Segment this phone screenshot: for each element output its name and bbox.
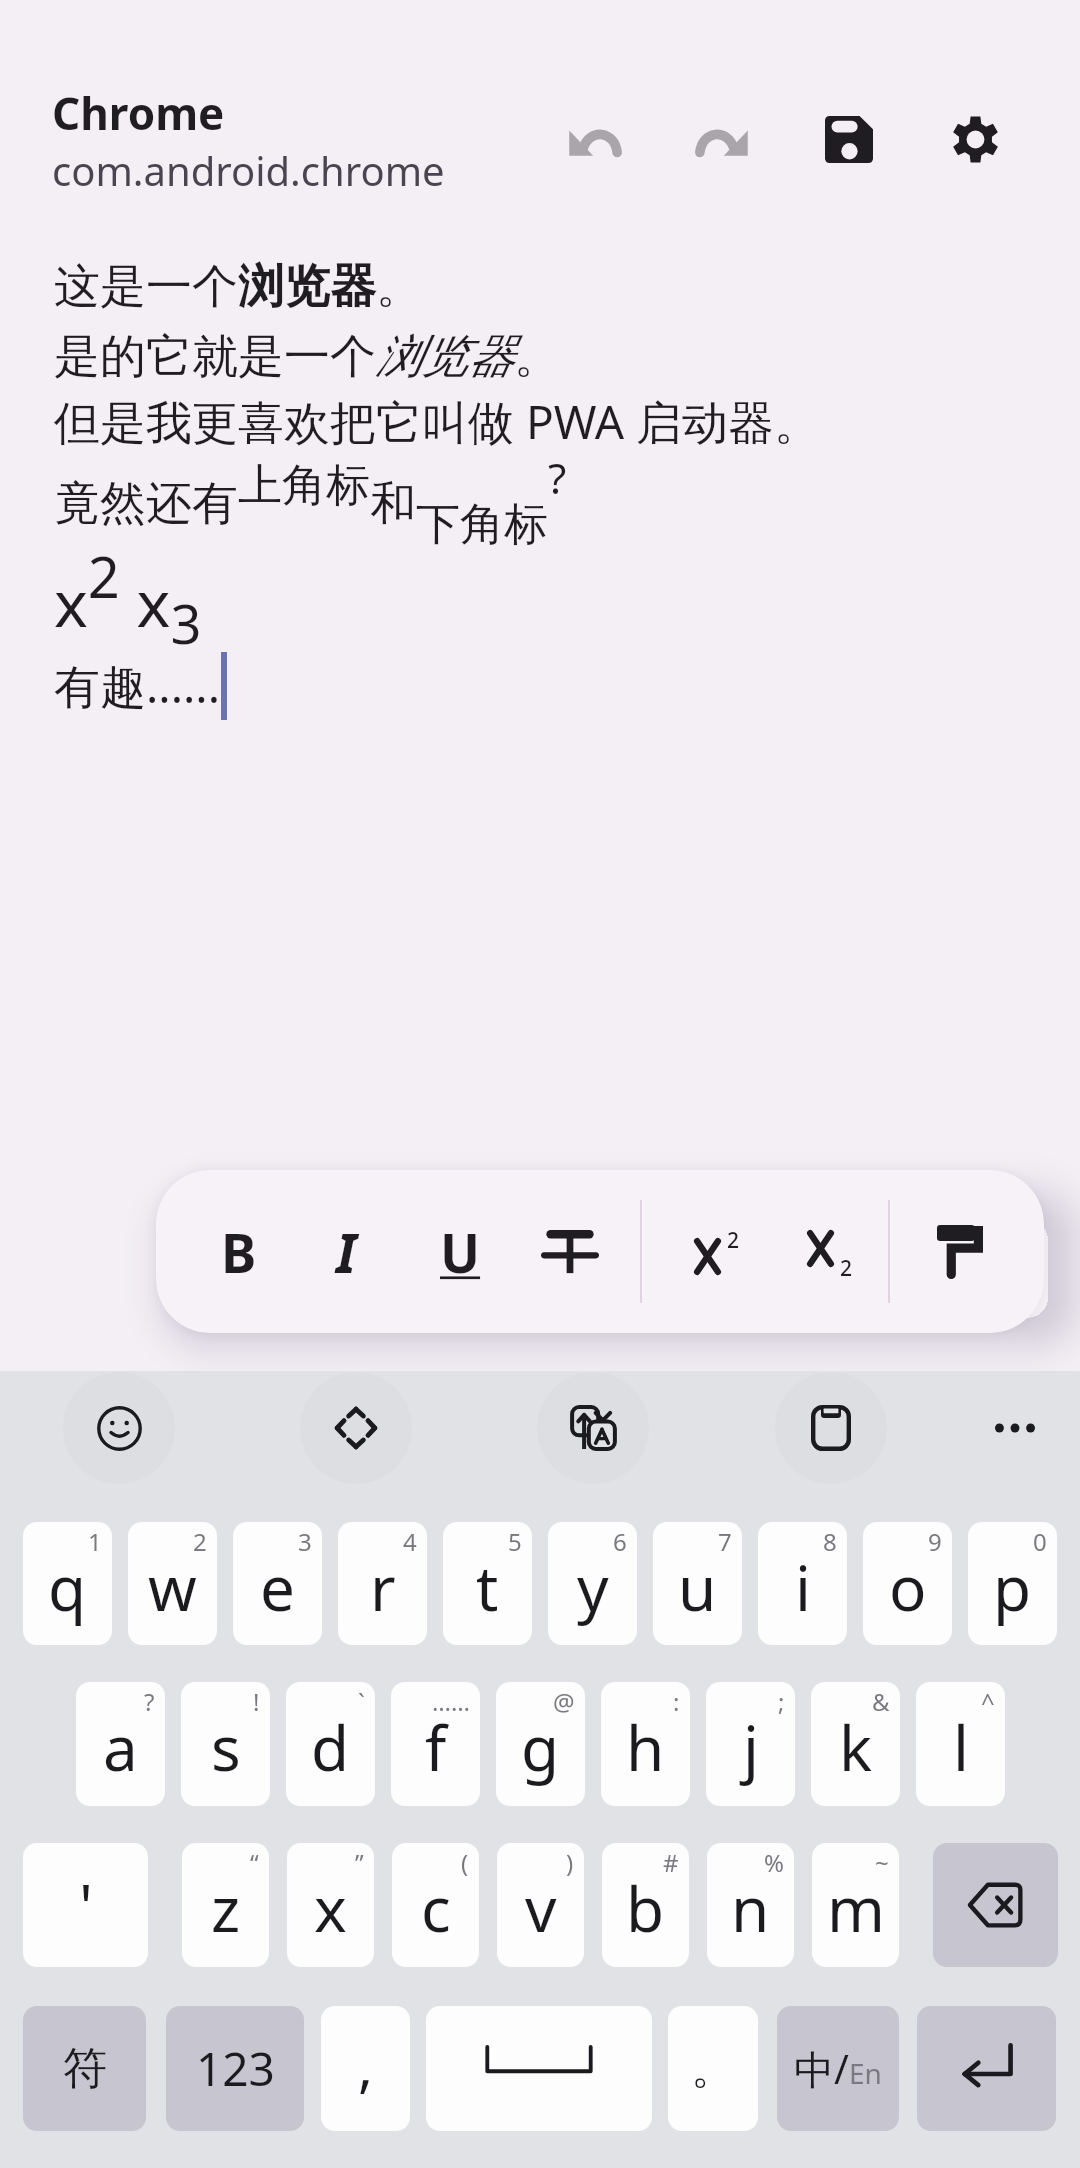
button[interactable]: 0 (968, 1522, 1057, 1645)
staticText: q (48, 1545, 87, 1629)
staticText: g (521, 1705, 560, 1789)
staticText: d (311, 1705, 350, 1789)
button[interactable]: “ (182, 1843, 269, 1967)
staticText: b (626, 1866, 665, 1950)
staticText: j (743, 1705, 759, 1789)
staticText: ) (566, 1846, 574, 1879)
staticText: n (731, 1866, 770, 1950)
button[interactable]: : (601, 1682, 690, 1806)
staticText: p (993, 1545, 1032, 1629)
button[interactable]: 3 (233, 1522, 322, 1645)
staticText: 0 (1033, 1525, 1047, 1558)
staticText: f (425, 1705, 447, 1789)
button[interactable]: & (811, 1682, 900, 1806)
button[interactable]: ^ (916, 1682, 1005, 1806)
button[interactable]: Chrome (52, 83, 445, 197)
button[interactable]: Settings (923, 87, 1027, 191)
staticText: 2 (193, 1525, 207, 1558)
button[interactable]: Italic (291, 1170, 401, 1333)
button[interactable]: ( (392, 1843, 479, 1967)
staticText: u (678, 1545, 717, 1629)
staticText: s (211, 1705, 241, 1789)
staticText: ^ (981, 1685, 995, 1718)
button[interactable]: Underline (405, 1170, 515, 1333)
button[interactable]: , (321, 2006, 410, 2131)
staticText: B (221, 1216, 257, 1288)
button[interactable]: ; (706, 1682, 795, 1806)
button[interactable]: ! (181, 1682, 270, 1806)
staticText: 7 (718, 1525, 732, 1558)
staticText: 3 (298, 1525, 312, 1558)
button[interactable]: Strikethrough (515, 1170, 625, 1333)
staticText: h (626, 1705, 665, 1789)
button[interactable]: ' (23, 1843, 148, 1967)
staticText: ( (461, 1846, 469, 1879)
staticText: ; (778, 1685, 785, 1718)
button[interactable]: Text style (905, 1170, 1015, 1333)
button[interactable]: Clipboard (775, 1372, 887, 1484)
staticText: I (336, 1216, 357, 1288)
button[interactable]: …… (391, 1682, 480, 1806)
staticText: ` (358, 1685, 365, 1718)
button[interactable]: Superscript (661, 1170, 771, 1333)
button[interactable]: 4 (338, 1522, 427, 1645)
button[interactable]: 。 (668, 2006, 758, 2131)
staticText: ? (144, 1685, 155, 1718)
staticText: 8 (823, 1525, 837, 1558)
staticText: a (103, 1705, 138, 1789)
button[interactable]: Undo (543, 89, 647, 193)
button[interactable]: Save (797, 87, 901, 191)
button[interactable]: 5 (443, 1522, 532, 1645)
staticText: 中/En (794, 2041, 882, 2096)
button[interactable]: 7 (653, 1522, 742, 1645)
button[interactable]: Translate (537, 1372, 649, 1484)
button[interactable]: Bold (184, 1170, 294, 1333)
button[interactable]: ) (497, 1843, 584, 1967)
button[interactable]: Move cursor (300, 1372, 412, 1484)
button[interactable]: Subscript (774, 1170, 884, 1333)
staticText: “ (250, 1846, 259, 1879)
button[interactable]: 8 (758, 1522, 847, 1645)
button[interactable]: Enter (917, 2006, 1056, 2131)
staticText: % (764, 1846, 784, 1879)
button[interactable]: 2 (128, 1522, 217, 1645)
staticText: ! (253, 1685, 260, 1718)
staticText: l (953, 1705, 969, 1789)
staticText: t (476, 1545, 499, 1629)
staticText: e (260, 1545, 295, 1629)
button[interactable]: More options (959, 1372, 1071, 1484)
staticText: k (839, 1705, 873, 1789)
staticText: @ (553, 1685, 575, 1718)
staticText: U (440, 1216, 481, 1288)
staticText: 4 (403, 1525, 417, 1558)
staticText: 2 (840, 1254, 853, 1283)
staticText: v (525, 1866, 557, 1950)
button[interactable]: Redo (669, 89, 773, 193)
button[interactable]: Backspace (933, 1843, 1058, 1967)
button[interactable]: ~ (812, 1843, 899, 1967)
staticText: c (421, 1866, 451, 1950)
staticText: 但是我更喜欢把它叫做 PWA 启动器。 (54, 390, 821, 453)
button[interactable]: Space (426, 2006, 652, 2131)
button[interactable]: 9 (863, 1522, 952, 1645)
button[interactable]: 123 (166, 2006, 304, 2131)
button[interactable]: @ (496, 1682, 585, 1806)
staticText: 竟然还有上角标和下角标? (54, 449, 567, 552)
button[interactable]: 6 (548, 1522, 637, 1645)
staticText: 1 (88, 1525, 102, 1558)
button[interactable]: ? (76, 1682, 165, 1806)
staticText: 5 (508, 1525, 522, 1558)
button[interactable]: ` (286, 1682, 375, 1806)
button[interactable]: ” (287, 1843, 374, 1967)
button[interactable]: 1 (23, 1522, 112, 1645)
button[interactable]: Emoji (63, 1372, 175, 1484)
staticText: ” (355, 1846, 364, 1879)
staticText: x2 x3 (54, 538, 202, 660)
button[interactable]: # (602, 1843, 689, 1967)
button[interactable]: % (707, 1843, 794, 1967)
staticText: 6 (613, 1525, 627, 1558)
staticText: 123 (196, 2037, 275, 2100)
staticText: x (314, 1866, 347, 1950)
button[interactable]: 符 (23, 2006, 146, 2131)
button[interactable]: 中/En (777, 2006, 899, 2131)
